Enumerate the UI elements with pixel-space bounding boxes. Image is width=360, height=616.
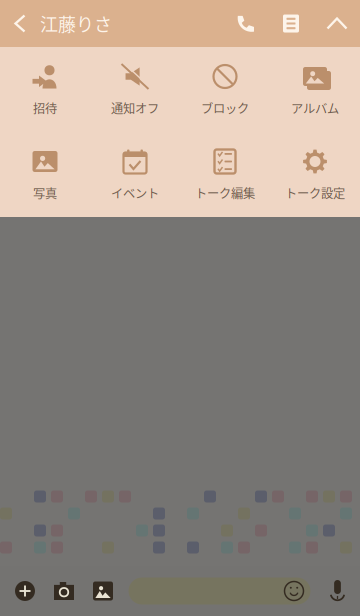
button[interactable]: 写真 (0, 132, 90, 217)
staticText: トーク編集 (195, 184, 255, 202)
button[interactable]: Notes (268, 0, 314, 47)
button[interactable]: Back (0, 0, 40, 47)
button[interactable]: トーク編集 (180, 132, 270, 217)
staticText: 江藤りさ (40, 10, 112, 37)
button[interactable]: Hide menu (314, 0, 360, 47)
button[interactable]: Call (224, 0, 268, 47)
button[interactable]: トーク設定 (270, 132, 360, 217)
button[interactable]: Voice message (316, 566, 358, 616)
button[interactable]: アルバム (270, 47, 360, 132)
staticText: 写真 (33, 184, 57, 202)
button[interactable]: 招待 (0, 47, 90, 132)
staticText: 通知オフ (111, 99, 159, 117)
button[interactable]: Add (5, 566, 44, 616)
staticText: ブロック (201, 99, 249, 117)
staticText: アルバム (291, 99, 339, 117)
button[interactable]: Message (122, 566, 316, 616)
staticText: 招待 (33, 99, 57, 117)
staticText: イベント (111, 184, 159, 202)
button[interactable]: イベント (90, 132, 180, 217)
button[interactable]: Camera (44, 566, 83, 616)
button[interactable]: Photos (83, 566, 122, 616)
button[interactable]: 通知オフ (90, 47, 180, 132)
button[interactable]: ブロック (180, 47, 270, 132)
staticText: トーク設定 (285, 184, 345, 202)
